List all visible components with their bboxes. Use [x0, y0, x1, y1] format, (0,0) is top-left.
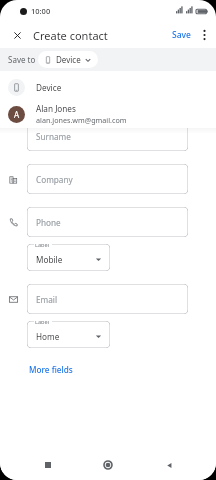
- staticText: Save: [172, 29, 191, 41]
- button[interactable]: Device: [0, 76, 216, 99]
- button[interactable]: Close: [6, 24, 28, 46]
- staticText: Create contact: [33, 28, 108, 43]
- button[interactable]: Company: [27, 164, 188, 194]
- staticText: Company: [36, 174, 73, 185]
- staticText: alan.jones.wm@gmail.com: [36, 115, 127, 125]
- button[interactable]: Home: [95, 452, 121, 478]
- staticText: Label: [35, 244, 50, 249]
- button[interactable]: Surname: [27, 121, 188, 151]
- button[interactable]: Label: [27, 321, 110, 348]
- staticText: Label: [35, 321, 50, 326]
- staticText: Device: [56, 54, 81, 65]
- button[interactable]: Save: [169, 27, 194, 43]
- staticText: More fields: [29, 364, 73, 375]
- button[interactable]: More options: [195, 26, 213, 44]
- button[interactable]: Back: [156, 452, 182, 478]
- staticText: Alan Jones: [36, 103, 76, 114]
- button[interactable]: More fields: [27, 362, 75, 377]
- staticText: Phone: [36, 217, 61, 228]
- staticText: Device: [36, 82, 62, 93]
- staticText: Save to: [8, 54, 36, 65]
- button[interactable]: First name: [27, 84, 188, 114]
- button[interactable]: A: [0, 102, 216, 126]
- button[interactable]: Recent apps: [35, 452, 61, 478]
- button[interactable]: Label: [27, 244, 110, 271]
- staticText: Home: [36, 331, 60, 342]
- staticText: Surname: [36, 131, 71, 142]
- staticText: 10:00: [31, 6, 51, 16]
- button[interactable]: Device: [38, 51, 98, 68]
- button[interactable]: Email: [27, 284, 188, 314]
- button[interactable]: Phone: [27, 207, 188, 237]
- staticText: Email: [36, 294, 58, 305]
- staticText: A: [14, 109, 20, 120]
- staticText: Mobile: [36, 254, 63, 265]
